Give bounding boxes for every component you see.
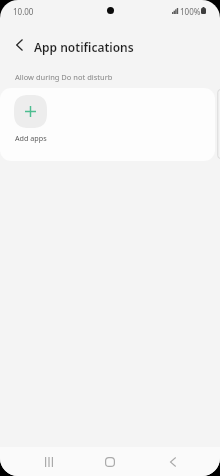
staticText: App notifications bbox=[34, 39, 134, 55]
button[interactable]: Navigate up bbox=[3, 29, 35, 61]
staticText: Add apps bbox=[15, 133, 47, 143]
button[interactable]: Home bbox=[93, 447, 127, 476]
staticText: 100% bbox=[180, 6, 201, 17]
staticText: Allow during Do not disturb bbox=[15, 72, 113, 82]
button[interactable]: Recent apps bbox=[32, 447, 66, 476]
button[interactable]: Back bbox=[156, 447, 190, 476]
button[interactable]: Add apps bbox=[14, 95, 47, 143]
staticText: 10.00 bbox=[13, 6, 34, 17]
